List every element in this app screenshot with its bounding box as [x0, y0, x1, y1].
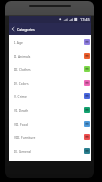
button[interactable]: III. Clothes [9, 62, 91, 76]
staticText: V. Crime [14, 94, 27, 98]
button[interactable]: VII. Food [9, 117, 91, 130]
button[interactable]: VIII. Furniture [9, 130, 91, 144]
staticText: Categories [17, 27, 35, 32]
staticText: VII. Food [14, 122, 28, 126]
staticText: 17:45 [80, 17, 90, 22]
staticText: I. Age [14, 40, 23, 44]
staticText: VI. Death [14, 108, 29, 112]
button[interactable]: IX. General [9, 144, 91, 158]
staticText: IV. Colors [14, 81, 29, 85]
button[interactable]: V. Crime [9, 89, 91, 103]
staticText: II. Animals [14, 54, 31, 58]
button[interactable]: Back [9, 23, 17, 35]
button[interactable]: VI. Death [9, 103, 91, 117]
button[interactable]: II. Animals [9, 49, 91, 62]
staticText: III. Clothes [14, 67, 31, 71]
button[interactable]: IV. Colors [9, 76, 91, 89]
staticText: IX. General [14, 149, 31, 153]
staticText: VIII. Furniture [14, 135, 36, 139]
button[interactable]: I. Age [9, 35, 91, 49]
